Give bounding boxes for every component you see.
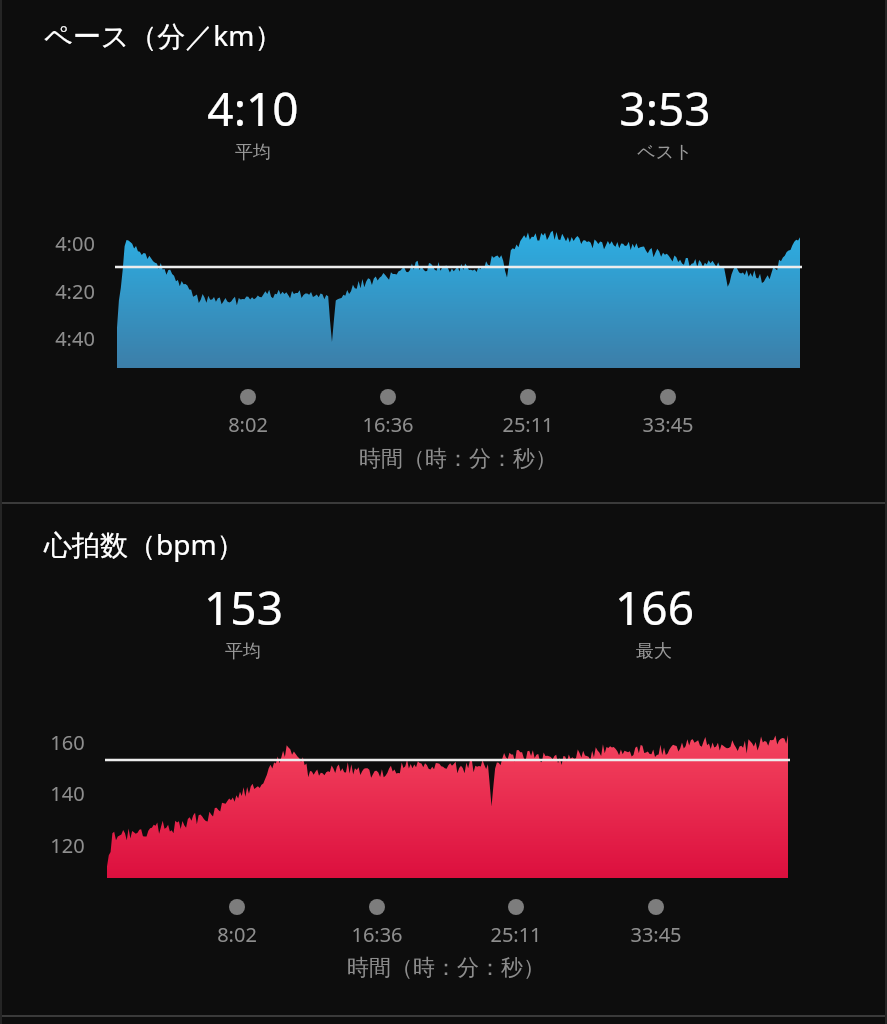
- staticText: 8:02: [217, 921, 257, 948]
- staticText: 153: [204, 576, 283, 639]
- button[interactable]: 心拍数（bpm）: [0, 504, 887, 1015]
- staticText: 4:10: [207, 77, 299, 140]
- button[interactable]: ペース（分／km）: [0, 0, 887, 503]
- staticText: 4:20: [55, 278, 95, 305]
- staticText: 時間（時：分：秒）: [347, 954, 545, 982]
- staticText: 160: [50, 729, 85, 756]
- staticText: 4:40: [55, 325, 95, 352]
- staticText: ペース（分／km）: [44, 16, 283, 54]
- staticText: 166: [615, 576, 694, 639]
- staticText: 16:36: [362, 411, 414, 438]
- staticText: 140: [50, 780, 85, 807]
- staticText: 最大: [636, 640, 672, 663]
- staticText: 120: [50, 832, 85, 859]
- staticText: 平均: [235, 141, 271, 164]
- staticText: 3:53: [619, 77, 711, 140]
- staticText: 25:11: [502, 411, 554, 438]
- staticText: 33:45: [642, 411, 694, 438]
- staticText: ベスト: [637, 141, 693, 164]
- staticText: 33:45: [630, 921, 682, 948]
- staticText: 25:11: [490, 921, 542, 948]
- staticText: 時間（時：分：秒）: [359, 445, 557, 473]
- staticText: 平均: [225, 640, 261, 663]
- staticText: 心拍数（bpm）: [44, 525, 245, 563]
- staticText: 16:36: [351, 921, 403, 948]
- staticText: 8:02: [228, 411, 268, 438]
- staticText: 4:00: [55, 230, 95, 257]
